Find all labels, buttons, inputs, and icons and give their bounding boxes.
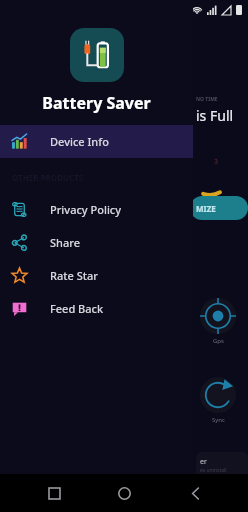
staticText: Battery Saver [42, 92, 151, 114]
button[interactable]: Back [178, 476, 212, 510]
staticText: Device Info [50, 134, 109, 149]
button[interactable]: Sync [200, 377, 236, 424]
staticText: 3 [214, 157, 219, 167]
staticText: is Full [196, 106, 234, 125]
staticText: Share [50, 235, 80, 250]
button[interactable]: Gps [200, 298, 236, 345]
button[interactable]: Feed Back [0, 292, 193, 325]
staticText: Feed Back [50, 301, 104, 316]
button[interactable]: Home [107, 476, 141, 510]
button[interactable]: Rate Star [0, 259, 193, 292]
staticText: OTHER PRODUCTS [12, 172, 84, 183]
staticText: Rate Star [50, 268, 98, 283]
button[interactable]: Share [0, 226, 193, 259]
button[interactable]: Privacy Policy [0, 193, 193, 226]
staticText: Sync [212, 416, 225, 424]
button[interactable]: Device Info [0, 125, 193, 158]
staticText: Privacy Policy [50, 202, 122, 217]
button[interactable]: MIZE [190, 196, 248, 220]
staticText: MIZE [196, 203, 216, 214]
button[interactable]: Recent apps [37, 476, 71, 510]
staticText: Gps [213, 337, 224, 345]
staticText: es uninstall [200, 467, 227, 474]
staticText: er [200, 457, 207, 467]
staticText: NO TIME [196, 96, 218, 103]
